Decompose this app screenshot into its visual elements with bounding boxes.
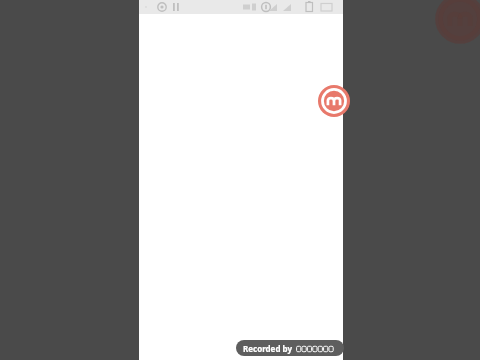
button[interactable]: Mobizen recorder xyxy=(318,85,350,117)
staticText: Recorded by xyxy=(243,343,292,354)
